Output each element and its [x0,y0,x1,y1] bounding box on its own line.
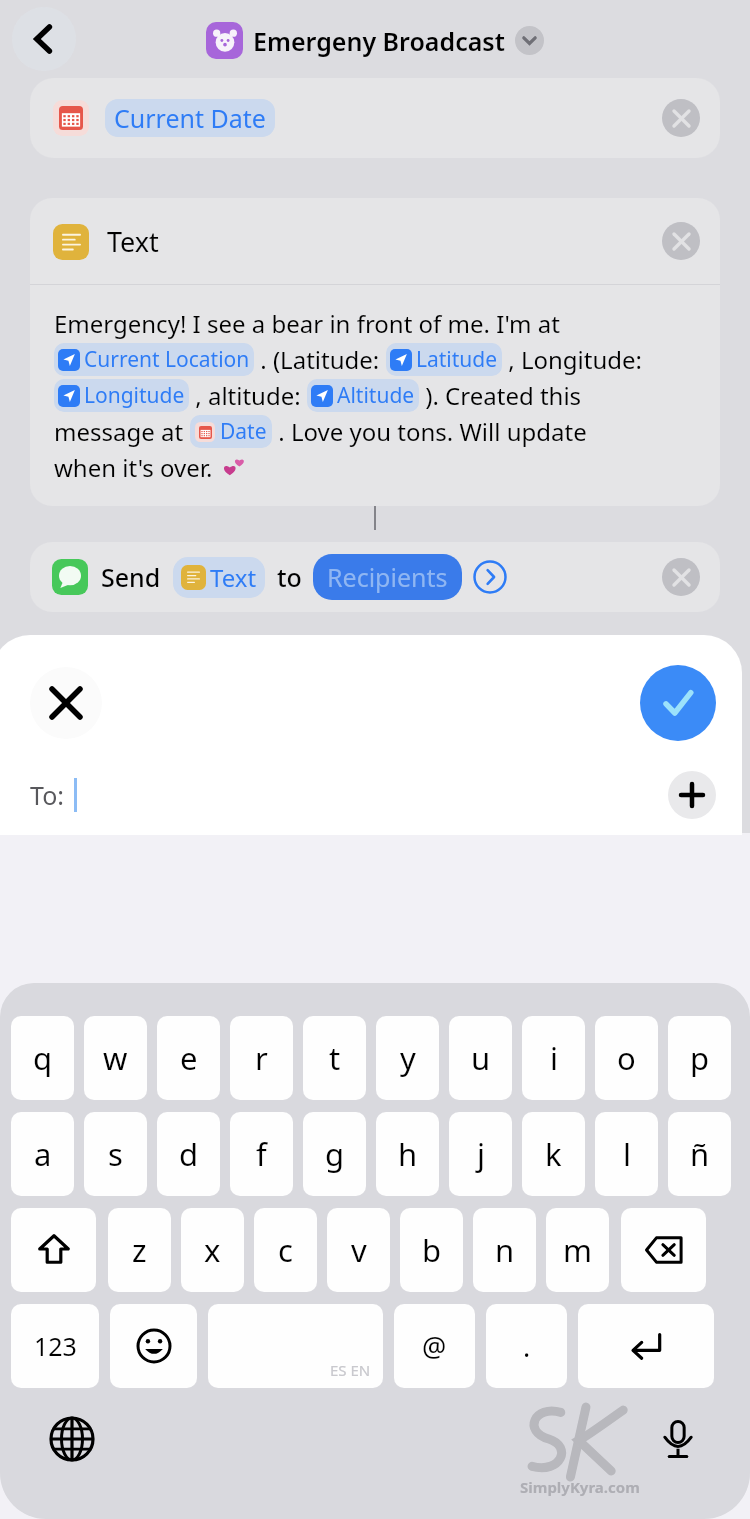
staticText: d [179,1133,199,1175]
staticText: Current Location [84,345,250,374]
button[interactable]: z [108,1208,171,1292]
button[interactable]: @ [394,1304,475,1388]
staticText: j [477,1133,485,1175]
button[interactable]: r [230,1016,293,1100]
button[interactable]: Shift [11,1208,96,1292]
staticText: 123 [34,1329,77,1363]
staticText: Longitude [84,381,185,410]
staticText: o [617,1037,636,1079]
button[interactable]: . [486,1304,567,1388]
button[interactable]: s [84,1112,147,1196]
staticText: ES EN [330,1360,371,1380]
staticText: . [523,1328,531,1365]
staticText: e [180,1037,198,1079]
staticText: t [329,1037,341,1079]
button[interactable]: w [84,1016,147,1100]
staticText: x [204,1229,221,1271]
staticText: Send [101,560,161,594]
staticText: l [623,1133,631,1175]
button[interactable]: More options [515,26,544,55]
button[interactable]: Back [12,7,76,71]
staticText: SimplyKyra.com [520,1477,640,1497]
button[interactable]: 123 [11,1304,99,1388]
button[interactable]: Text [30,198,720,284]
staticText: Text [107,223,159,260]
staticText: Emergeny Broadcast [253,24,505,58]
button[interactable]: k [522,1112,585,1196]
button[interactable]: x [181,1208,244,1292]
staticText: Latitude [416,345,498,374]
button[interactable]: Dictation [652,1413,704,1465]
staticText: ). Created this [419,379,582,412]
button[interactable]: Send [30,542,720,612]
staticText: . Love you tons. Will update [272,415,587,448]
staticText: Altitude [337,381,415,410]
staticText: n [495,1229,515,1271]
staticText: v [351,1229,367,1271]
button[interactable]: f [230,1112,293,1196]
staticText: y [400,1037,416,1079]
button[interactable]: b [400,1208,463,1292]
staticText: . (Latitude: [254,343,386,376]
button[interactable]: Add recipient [668,771,716,819]
staticText: i [550,1037,558,1079]
button[interactable]: Emoji [110,1304,197,1388]
button[interactable]: Done [640,665,716,741]
button[interactable]: Remove [662,558,700,596]
staticText: @ [422,1328,447,1365]
staticText: m [563,1229,592,1271]
button[interactable]: h [376,1112,439,1196]
button[interactable]: j [449,1112,512,1196]
staticText: , altitude: [189,379,307,412]
staticText: To: [30,778,64,812]
button[interactable]: l [595,1112,658,1196]
button[interactable]: p [668,1016,731,1100]
staticText: g [325,1133,345,1175]
button[interactable]: ñ [668,1112,731,1196]
button[interactable]: Change keyboard [46,1413,98,1465]
staticText: q [33,1037,53,1079]
button[interactable]: Space [208,1304,383,1388]
button[interactable]: Return [578,1304,714,1388]
staticText: h [398,1133,418,1175]
button[interactable]: Backspace [621,1208,706,1292]
staticText: a [34,1133,52,1175]
staticText: f [256,1133,267,1175]
button[interactable]: u [449,1016,512,1100]
button[interactable]: Open recipients [473,560,507,594]
staticText: Recipients [327,560,448,594]
button[interactable]: e [157,1016,220,1100]
button[interactable]: m [546,1208,609,1292]
button[interactable]: y [376,1016,439,1100]
staticText: to [277,560,302,594]
staticText: Text [210,561,257,594]
staticText: b [422,1229,442,1271]
staticText: when it's over. [54,451,219,484]
staticText: p [690,1037,710,1079]
button[interactable]: a [11,1112,74,1196]
staticText: message at [54,415,190,448]
button[interactable]: v [327,1208,390,1292]
button[interactable]: d [157,1112,220,1196]
button[interactable]: Close [30,667,102,739]
staticText: Emergency! I see a bear in front of me. … [54,307,560,340]
staticText: z [132,1229,147,1271]
staticText: k [545,1133,562,1175]
button[interactable]: n [473,1208,536,1292]
button[interactable]: Remove [662,222,700,260]
button[interactable]: i [522,1016,585,1100]
button[interactable]: c [254,1208,317,1292]
button[interactable]: t [303,1016,366,1100]
staticText: u [471,1037,491,1079]
button[interactable]: o [595,1016,658,1100]
button[interactable]: Current Date [30,78,720,158]
staticText: w [103,1037,128,1079]
staticText: c [278,1229,293,1271]
button[interactable]: Remove [662,99,700,137]
button[interactable]: q [11,1016,74,1100]
staticText: , Longitude: [502,343,643,376]
staticText: r [255,1037,268,1079]
button[interactable]: g [303,1112,366,1196]
staticText: Date [220,417,267,446]
staticText: ñ [690,1133,710,1175]
